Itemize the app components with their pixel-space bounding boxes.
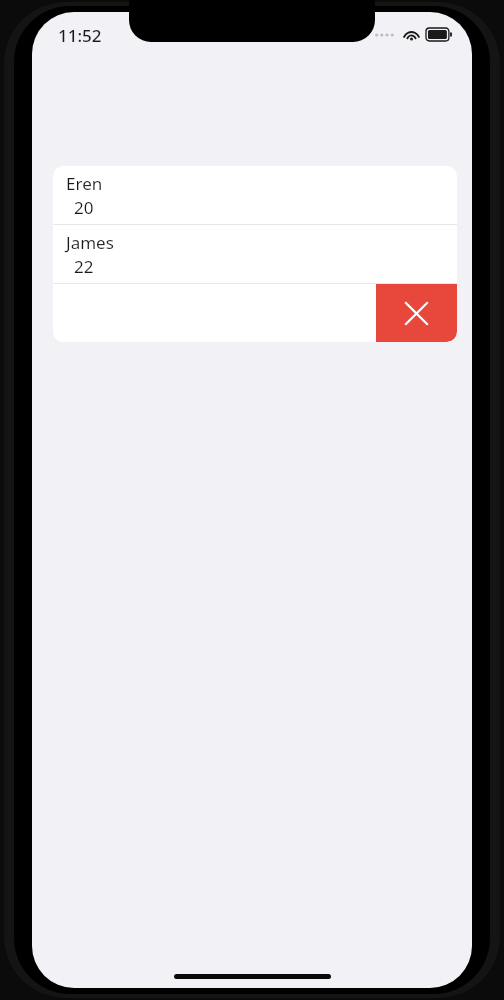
- staticText: James: [66, 231, 114, 254]
- staticText: 22: [74, 255, 94, 278]
- button[interactable]: Eren: [53, 166, 457, 224]
- staticText: 11:52: [58, 24, 102, 47]
- staticText: Eren: [66, 172, 103, 195]
- button[interactable]: James: [53, 225, 457, 283]
- staticText: 20: [74, 196, 94, 219]
- button[interactable]: Delete: [376, 284, 457, 342]
